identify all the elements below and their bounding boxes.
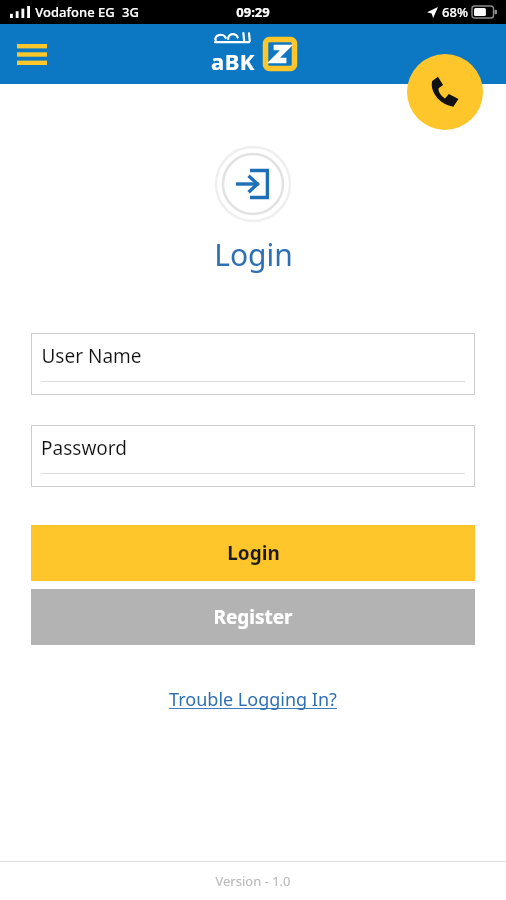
button[interactable]: Trouble Logging In? — [161, 683, 345, 716]
button[interactable]: Login — [31, 525, 475, 581]
staticText: 68% — [442, 3, 468, 21]
staticText: User Name — [41, 343, 142, 369]
staticText: 3G — [122, 3, 139, 21]
staticText: 09:29 — [236, 3, 270, 21]
staticText: Trouble Logging In? — [169, 687, 337, 712]
staticText: Vodafone EG — [35, 3, 115, 21]
button[interactable]: Call — [407, 54, 483, 130]
staticText: Login — [214, 234, 293, 275]
button[interactable]: Menu — [12, 34, 52, 74]
staticText: Password — [41, 435, 127, 461]
staticText: Version - 1.0 — [215, 872, 291, 890]
button[interactable]: User Name — [31, 333, 475, 395]
staticText: Register — [213, 604, 293, 630]
button[interactable]: Register — [31, 589, 475, 645]
staticText: aBK — [211, 46, 255, 76]
button[interactable]: Password — [31, 425, 475, 487]
staticText: Login — [227, 540, 280, 566]
